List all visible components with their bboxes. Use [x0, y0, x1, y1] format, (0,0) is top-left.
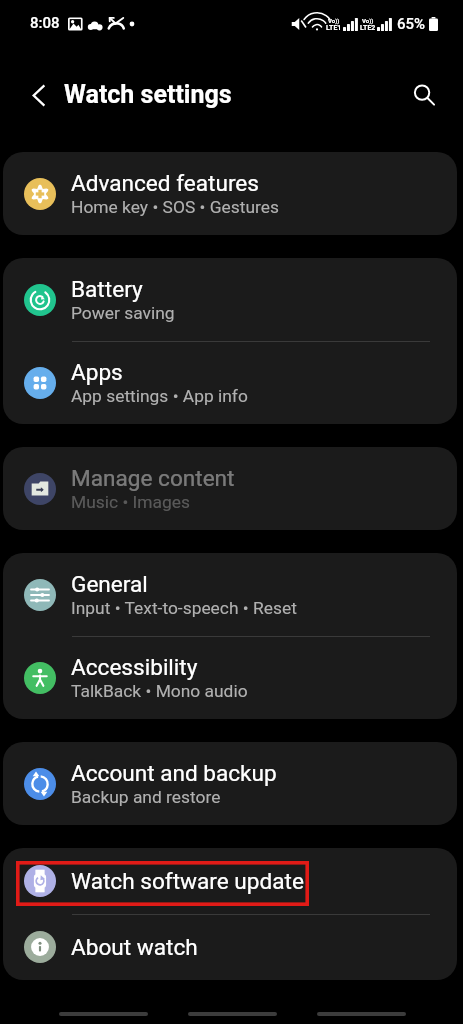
staticText: Backup and restore [71, 787, 221, 807]
button[interactable]: Search [403, 74, 445, 116]
staticText: Advanced features [71, 170, 259, 196]
button[interactable]: Manage content [3, 447, 457, 530]
staticText: Accessibility [71, 654, 198, 680]
button[interactable]: About watch [3, 914, 457, 980]
button[interactable]: Back [317, 1012, 406, 1016]
staticText: Home key • SOS • Gestures [71, 197, 279, 217]
staticText: General [71, 571, 148, 597]
staticText: LTE2 [360, 24, 376, 32]
button[interactable]: Accessibility [3, 636, 457, 719]
staticText: App settings • App info [71, 386, 248, 406]
button[interactable]: General [3, 553, 457, 636]
staticText: Apps [71, 359, 123, 385]
staticText: Vo)) [328, 17, 340, 24]
button[interactable]: Battery [3, 258, 457, 341]
staticText: Manage content [71, 465, 235, 491]
staticText: Watch software update [71, 868, 304, 894]
staticText: 8:08 [30, 14, 60, 32]
button[interactable]: Apps [3, 341, 457, 424]
button[interactable]: Advanced features [3, 152, 457, 235]
staticText: Music • Images [71, 492, 190, 512]
button[interactable]: Watch software update [3, 848, 457, 914]
staticText: About watch [71, 934, 198, 960]
staticText: Power saving [71, 303, 175, 323]
button[interactable]: Recents [59, 1012, 148, 1016]
staticText: 65% [397, 15, 426, 33]
staticText: LTE1 [326, 24, 342, 32]
staticText: Watch settings [64, 80, 232, 109]
staticText: Battery [71, 276, 143, 302]
staticText: Account and backup [71, 760, 277, 786]
staticText: Input • Text-to-speech • Reset [71, 598, 297, 618]
staticText: TalkBack • Mono audio [71, 681, 248, 701]
button[interactable]: Home [188, 1012, 277, 1016]
button[interactable]: Navigate up [17, 74, 59, 116]
staticText: Vo)) [362, 17, 374, 24]
button[interactable]: Account and backup [3, 742, 457, 825]
